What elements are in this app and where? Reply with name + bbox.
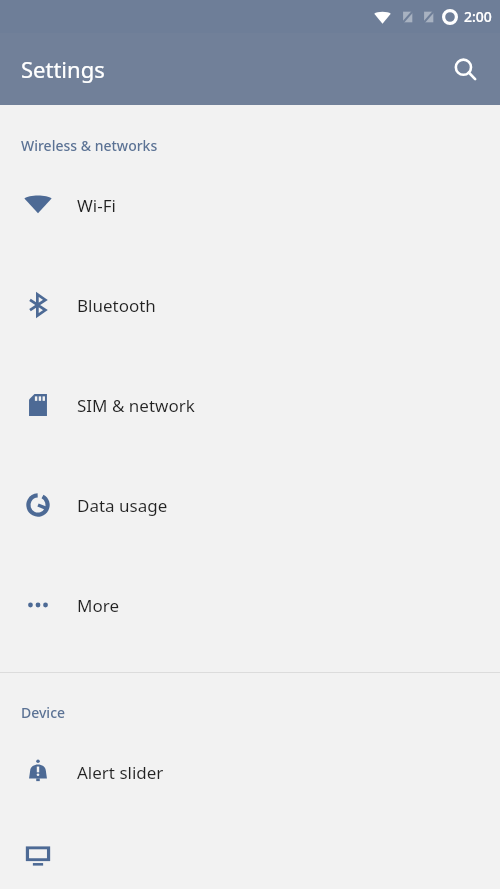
staticText: Data usage [77, 494, 168, 517]
staticText: Device [21, 703, 66, 722]
button[interactable] [0, 822, 500, 889]
button[interactable]: More [0, 555, 500, 655]
staticText: Wi-Fi [77, 194, 116, 217]
staticText: Wireless & networks [21, 136, 158, 155]
staticText: Alert slider [77, 761, 164, 784]
staticText: 2:00 [464, 7, 492, 26]
button[interactable]: SIM & network [0, 355, 500, 455]
button[interactable]: Data usage [0, 455, 500, 555]
button[interactable]: Search [443, 47, 487, 91]
button[interactable]: Wi-Fi [0, 155, 500, 255]
staticText: More [77, 594, 119, 617]
staticText: SIM & network [77, 394, 195, 417]
staticText: Settings [21, 54, 105, 84]
button[interactable]: Alert slider [0, 722, 500, 822]
button[interactable]: Bluetooth [0, 255, 500, 355]
staticText: Bluetooth [77, 294, 156, 317]
